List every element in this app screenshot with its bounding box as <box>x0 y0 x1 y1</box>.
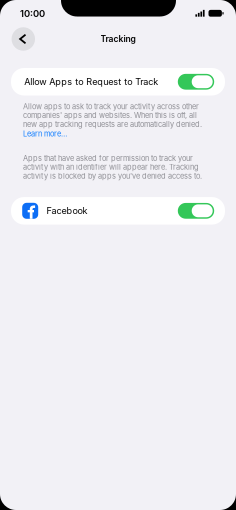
button[interactable]: Learn more… <box>23 129 67 138</box>
staticText: Facebook <box>47 205 88 216</box>
button[interactable]: Facebook <box>11 197 225 225</box>
staticText: Tracking <box>100 34 135 44</box>
staticText: Allow apps to ask to track your activity… <box>23 102 202 129</box>
button[interactable]: Back <box>12 27 35 51</box>
staticText: Allow Apps to Request to Track <box>24 76 158 87</box>
staticText: Learn more… <box>23 129 67 138</box>
button[interactable]: Allow Apps to Request to Track <box>11 68 225 95</box>
staticText: 10:00 <box>20 8 45 19</box>
staticText: Apps that have asked for permission to t… <box>23 154 202 181</box>
